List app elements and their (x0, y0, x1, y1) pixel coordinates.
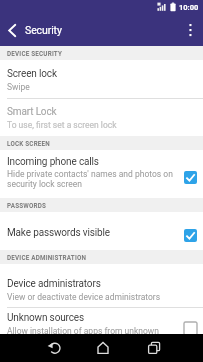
staticText: Device administrators (7, 278, 101, 290)
button[interactable]: Device administrators (0, 264, 203, 307)
button[interactable] (83, 334, 123, 362)
staticText: DEVICE ADMINISTRATION (7, 254, 87, 261)
staticText: LOCK SCREEN (7, 140, 50, 147)
staticText: Smart Lock (7, 106, 57, 118)
staticText: Make passwords visible (7, 227, 111, 239)
staticText: To use, first set a screen lock (7, 120, 117, 130)
staticText: DEVICE SECURITY (7, 50, 63, 57)
button[interactable]: Security (0, 14, 203, 46)
button[interactable] (134, 334, 174, 362)
button[interactable]: Unknown sources (0, 308, 203, 362)
button[interactable]: Incoming phone calls (0, 150, 203, 198)
staticText: Hide private contacts' names and photos … (7, 169, 173, 179)
staticText: Swipe (7, 82, 30, 92)
staticText: Unknown sources (7, 312, 84, 324)
staticText: Screen lock (7, 68, 57, 80)
staticText: Allow installation of apps from unknown (7, 326, 159, 336)
button[interactable] (177, 14, 203, 46)
staticText: PASSWORDS (7, 202, 47, 209)
staticText: Incoming phone calls (7, 156, 99, 168)
staticText: security lock screen (7, 179, 83, 189)
button[interactable] (34, 334, 74, 362)
button[interactable]: Screen lock (0, 60, 203, 98)
staticText: 10:00 (179, 3, 199, 12)
staticText: View or deactivate device administrators (7, 292, 161, 302)
staticText: Security (25, 24, 62, 36)
button[interactable]: Smart Lock (0, 99, 203, 136)
button[interactable]: Make passwords visible (0, 212, 203, 250)
